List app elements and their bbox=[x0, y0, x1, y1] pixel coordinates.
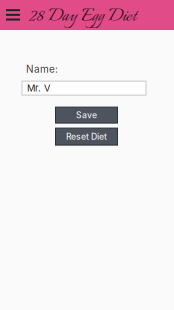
staticText: 28 Day Egg Diet bbox=[28, 2, 136, 31]
button[interactable]: Reset Diet bbox=[55, 128, 117, 145]
button[interactable]: Menu bbox=[3, 0, 23, 30]
button[interactable]: Save bbox=[55, 107, 117, 123]
staticText: Name: bbox=[26, 63, 58, 75]
staticText: Save bbox=[76, 110, 97, 120]
staticText: Mr. V bbox=[27, 82, 50, 94]
staticText: Reset Diet bbox=[66, 131, 107, 142]
